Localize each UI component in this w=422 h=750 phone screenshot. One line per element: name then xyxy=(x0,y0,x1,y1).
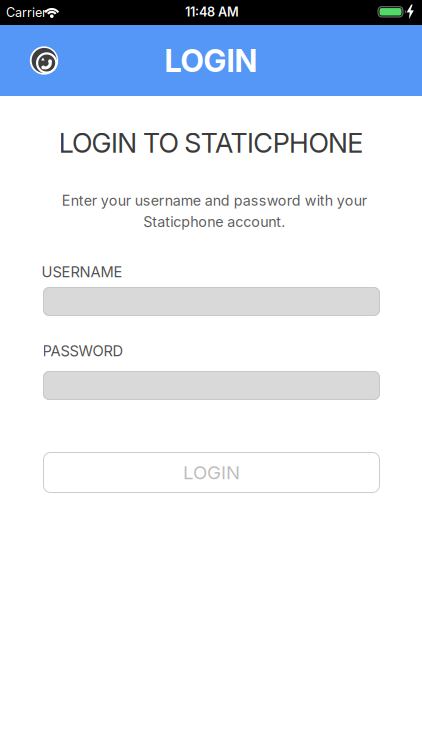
staticText: LOGIN xyxy=(183,461,240,484)
button[interactable]: Staticphone xyxy=(27,43,61,77)
staticText: PASSWORD xyxy=(42,342,123,360)
staticText: USERNAME xyxy=(41,263,122,281)
staticText: Enter your username and password with yo… xyxy=(61,192,366,230)
button[interactable]: Username xyxy=(43,287,380,316)
staticText: LOGIN xyxy=(164,42,257,79)
staticText: 11:48 AM xyxy=(185,4,239,20)
staticText: LOGIN TO STATICPHONE xyxy=(59,127,363,159)
button[interactable]: Password xyxy=(43,371,380,400)
staticText: Carrier xyxy=(6,5,47,20)
button[interactable]: LOGIN xyxy=(43,452,380,493)
